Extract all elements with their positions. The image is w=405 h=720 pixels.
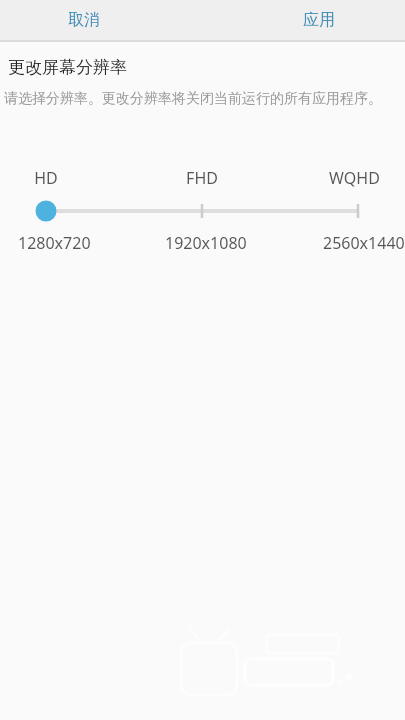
staticText: 更改屏幕分辨率 — [8, 57, 127, 78]
staticText: 1920x1080 — [165, 232, 247, 254]
button[interactable]: Resolution slider — [0, 196, 405, 226]
staticText: 取消 — [68, 10, 100, 30]
button[interactable]: 取消 — [48, 2, 120, 38]
staticText: 应用 — [303, 10, 335, 30]
staticText: FHD — [186, 167, 218, 189]
staticText: 请选择分辨率。更改分辨率将关闭当前运行的所有应用程序。 — [4, 90, 382, 108]
staticText: 1280x720 — [18, 232, 91, 254]
staticText: HD — [34, 167, 58, 189]
staticText: 2560x1440 — [323, 232, 405, 254]
button[interactable]: 应用 — [283, 2, 355, 38]
staticText: WQHD — [329, 167, 380, 189]
